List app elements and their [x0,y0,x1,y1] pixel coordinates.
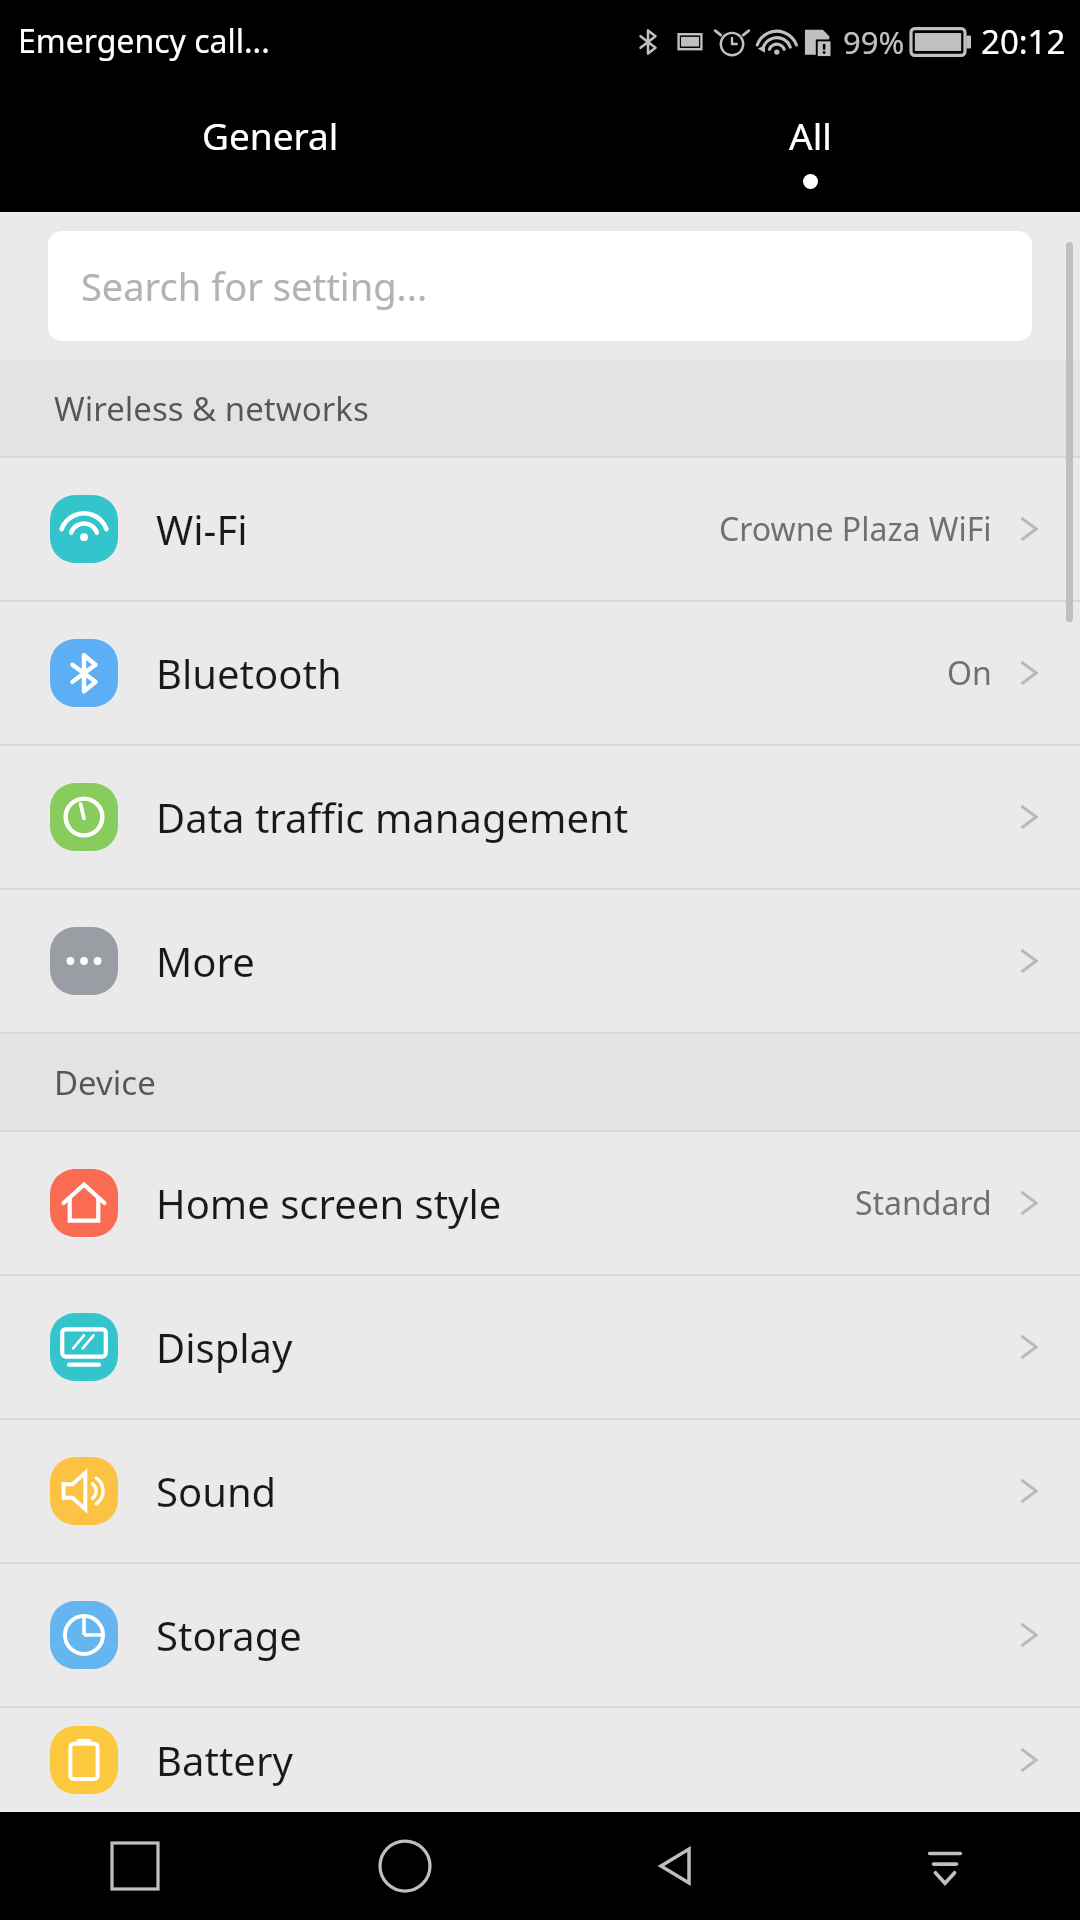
staticText: 99% [843,21,905,63]
button[interactable]: Wi-Fi [0,458,1080,600]
button[interactable]: Home screen style [0,1132,1080,1274]
button[interactable]: More [0,890,1080,1032]
staticText: All [789,110,832,160]
staticText: Search for setting... [81,260,428,312]
button[interactable]: General [0,82,540,212]
staticText: General [202,110,339,160]
staticText: Sound [156,1464,277,1518]
button[interactable]: Battery [0,1708,1080,1812]
button[interactable]: Back [540,1812,810,1920]
button[interactable]: Search for setting... [48,231,1032,341]
button[interactable]: Bluetooth [0,602,1080,744]
staticText: Wi-Fi [156,502,248,556]
staticText: Wireless & networks [54,386,369,431]
button[interactable]: Display [0,1276,1080,1418]
staticText: Crowne Plaza WiFi [719,507,992,551]
staticText: Data traffic management [156,790,629,844]
staticText: Storage [156,1608,302,1662]
button[interactable]: Hide navigation bar [810,1812,1080,1920]
staticText: More [156,934,255,988]
staticText: Home screen style [156,1176,502,1230]
staticText: Device [54,1060,156,1105]
staticText: Battery [156,1733,293,1787]
staticText: 20:12 [981,19,1066,64]
button[interactable]: Sound [0,1420,1080,1562]
button[interactable]: Recent apps [0,1812,270,1920]
staticText: Bluetooth [156,646,342,700]
staticText: Display [156,1320,293,1374]
staticText: Emergency call... [18,19,270,63]
button[interactable]: All [540,82,1080,212]
staticText: Standard [855,1181,992,1225]
button[interactable]: Home [270,1812,540,1920]
button[interactable]: Storage [0,1564,1080,1706]
button[interactable]: Data traffic management [0,746,1080,888]
staticText: On [947,651,992,695]
